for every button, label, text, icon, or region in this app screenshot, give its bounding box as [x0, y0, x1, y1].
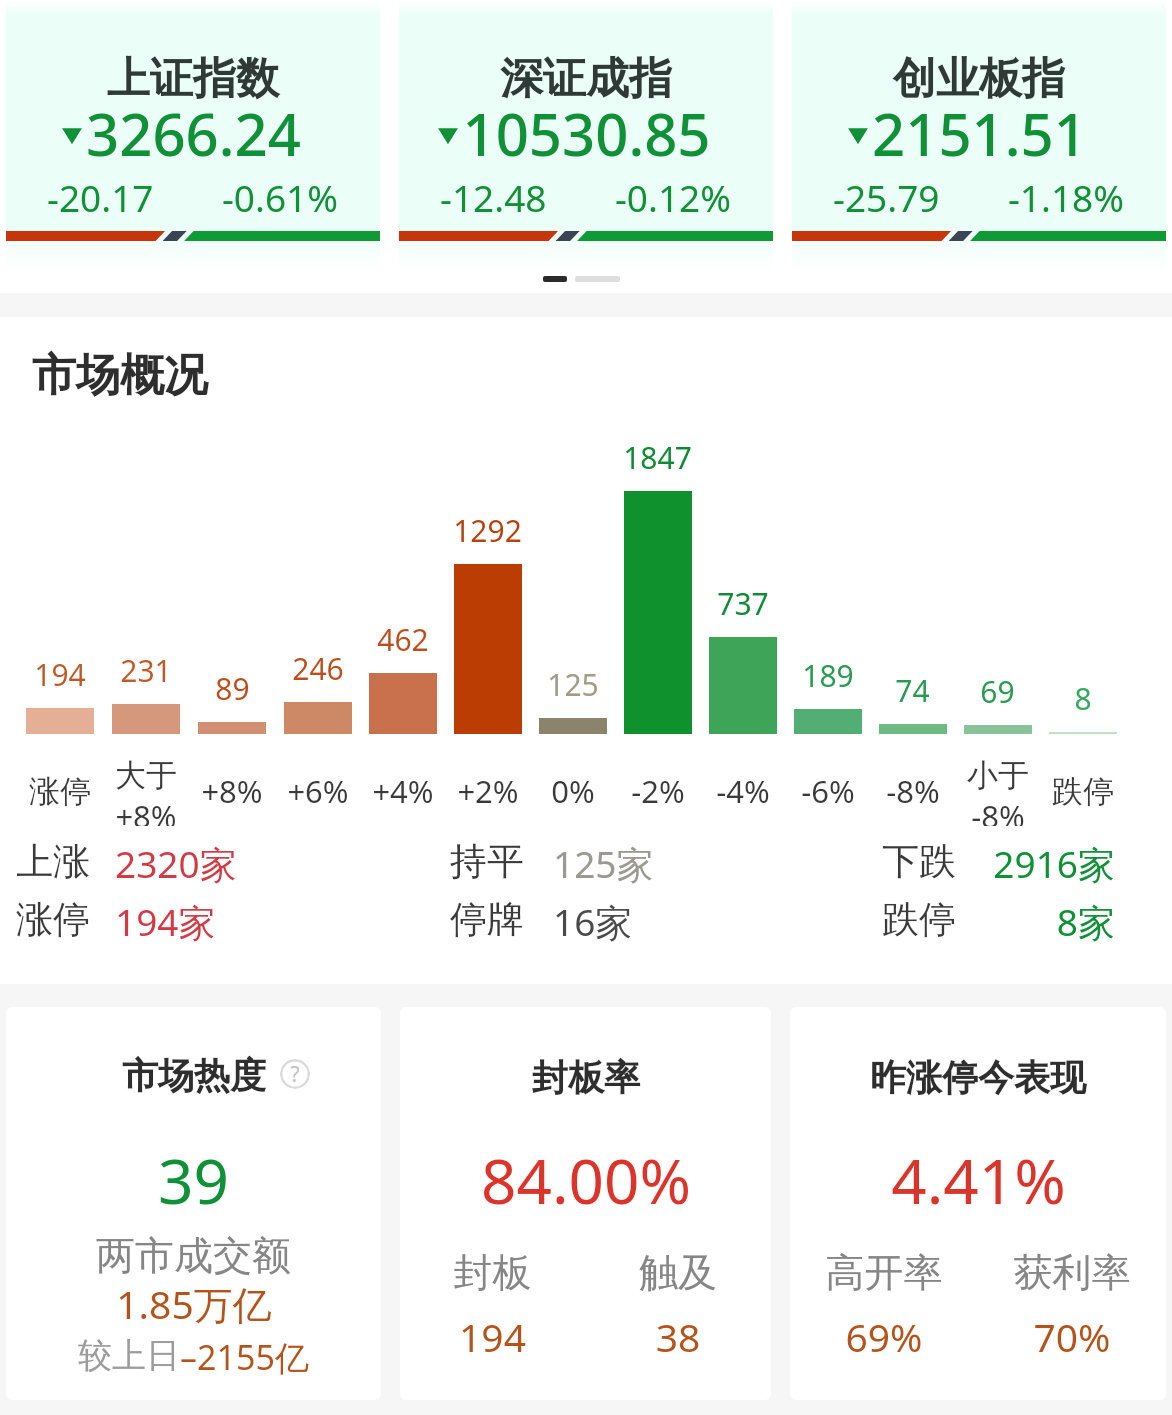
staticText: 停牌	[450, 896, 524, 943]
staticText: –2155亿	[180, 1334, 309, 1380]
staticText: 触及	[585, 1248, 771, 1297]
button[interactable]: 市场热度说明	[280, 1059, 310, 1089]
staticText: -4%	[716, 770, 770, 812]
staticText: 39	[158, 1138, 229, 1222]
staticText: 大于	[115, 756, 177, 795]
staticText: -0.61%	[192, 172, 338, 222]
staticText: 74	[895, 670, 930, 711]
button[interactable]: 创业板指	[792, 0, 1166, 272]
staticText: -8%	[971, 795, 1025, 826]
staticText: 38	[585, 1310, 771, 1363]
staticText: 跌停	[1052, 772, 1114, 811]
staticText: +8%	[201, 770, 263, 812]
staticText: +8%	[115, 795, 177, 826]
staticText: -0.12%	[585, 172, 731, 222]
staticText: -12.48	[440, 172, 585, 222]
staticText: 84.00%	[481, 1138, 691, 1222]
staticText: 涨停	[29, 772, 91, 811]
button[interactable]: 封板率	[400, 1007, 771, 1400]
staticText: 231	[120, 650, 172, 691]
staticText: 737	[717, 583, 769, 624]
staticText: 189	[802, 655, 854, 696]
staticText: 1.85万亿	[116, 1277, 272, 1330]
staticText: 深证成指	[500, 52, 672, 106]
staticText: 2151.51	[872, 94, 1087, 173]
staticText: 89	[215, 668, 250, 709]
staticText: 3266.24	[86, 94, 301, 173]
staticText: 持平	[450, 838, 524, 885]
staticText: 194家	[115, 896, 216, 947]
button[interactable]: 市场热度	[6, 1007, 381, 1400]
staticText: 封板率	[532, 1055, 640, 1100]
staticText: 市场概况	[32, 348, 208, 403]
staticText: ?	[290, 1060, 300, 1089]
staticText: 69	[980, 671, 1015, 712]
staticText: +2%	[457, 770, 519, 812]
staticText: 16家	[553, 896, 633, 947]
staticText: 小于	[967, 756, 1029, 795]
staticText: 1292	[453, 510, 522, 551]
staticText: -2%	[631, 770, 685, 812]
staticText: 8家	[915, 896, 1115, 947]
staticText: -25.79	[833, 172, 978, 222]
staticText: 10530.85	[462, 94, 711, 173]
staticText: 市场热度	[122, 1053, 266, 1098]
button[interactable]: 昨涨停今表现	[790, 1007, 1166, 1400]
staticText: 8	[1074, 678, 1092, 719]
staticText: 4.41%	[891, 1138, 1066, 1222]
staticText: -20.17	[47, 172, 192, 222]
staticText: 194	[34, 654, 86, 695]
staticText: 125家	[553, 838, 654, 889]
staticText: -1.18%	[978, 172, 1124, 222]
staticText: -8%	[886, 770, 940, 812]
staticText: 462	[377, 619, 429, 660]
staticText: 昨涨停今表现	[870, 1055, 1086, 1100]
staticText: 125	[547, 664, 599, 705]
staticText: 上证指数	[107, 52, 279, 106]
staticText: 两市成交额	[96, 1231, 291, 1280]
staticText: 创业板指	[893, 52, 1065, 106]
staticText: 跌停	[882, 896, 956, 943]
staticText: +4%	[372, 770, 434, 812]
button[interactable]: 上证指数	[6, 0, 380, 272]
staticText: 69%	[790, 1310, 978, 1363]
button[interactable]: 深证成指	[399, 0, 773, 272]
staticText: 2916家	[915, 838, 1115, 889]
staticText: 246	[292, 648, 344, 689]
staticText: 0%	[551, 770, 595, 812]
staticText: 下跌	[882, 838, 956, 885]
staticText: 70%	[978, 1310, 1166, 1363]
staticText: 封板	[400, 1248, 585, 1297]
staticText: 2320家	[115, 838, 237, 889]
staticText: 194	[400, 1310, 585, 1363]
staticText: 较上日	[78, 1334, 180, 1377]
staticText: 1847	[623, 437, 692, 478]
staticText: 涨停	[16, 896, 90, 943]
staticText: -6%	[801, 770, 855, 812]
button[interactable]: 第一页	[543, 276, 567, 282]
staticText: 上涨	[16, 838, 90, 885]
staticText: 高开率	[790, 1248, 978, 1297]
staticText: +6%	[287, 770, 349, 812]
staticText: 获利率	[978, 1248, 1166, 1297]
